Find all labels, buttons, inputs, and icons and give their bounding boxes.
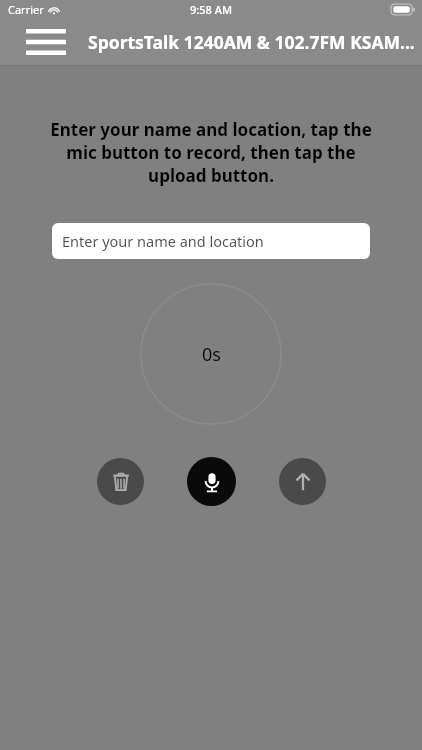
staticText: 0s — [202, 342, 221, 367]
button[interactable]: Upload — [279, 458, 326, 505]
staticText: Enter your name and location — [62, 231, 264, 251]
button[interactable]: Record — [187, 457, 236, 506]
button[interactable]: Menu — [18, 22, 74, 62]
staticText: SportsTalk 1240AM & 102.7FM KSAM... — [88, 30, 415, 54]
staticText: Carrier — [8, 2, 44, 17]
staticText: 9:58 AM — [190, 2, 233, 17]
staticText: Enter your name and location, tap the mi… — [40, 118, 382, 187]
button[interactable]: Enter your name and location — [52, 223, 370, 259]
button[interactable]: Delete recording — [97, 458, 144, 505]
